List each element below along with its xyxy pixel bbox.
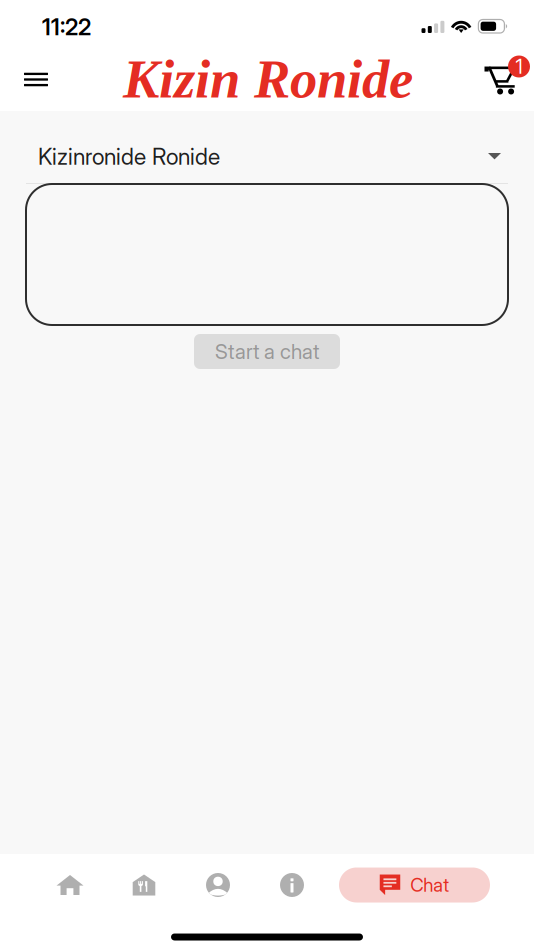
button[interactable]: Kizinronide Ronide [26, 129, 508, 184]
button[interactable]: Chat [339, 867, 490, 902]
button[interactable]: Home [33, 860, 107, 910]
staticText: Chat [410, 874, 449, 896]
staticText: Start a chat [215, 339, 319, 364]
staticText: 11:22 [42, 13, 91, 41]
button[interactable]: Account [181, 860, 255, 910]
button[interactable]: Start a chat [194, 334, 340, 369]
button[interactable]: Menu [12, 54, 60, 104]
staticText: Kizinronide Ronide [38, 143, 220, 170]
staticText: 1 [515, 54, 522, 79]
staticText: Kizin Ronide [123, 49, 413, 109]
button[interactable]: Restaurants [107, 860, 181, 910]
button[interactable]: Cart, 1 item [483, 52, 533, 106]
button[interactable]: About [255, 860, 329, 910]
